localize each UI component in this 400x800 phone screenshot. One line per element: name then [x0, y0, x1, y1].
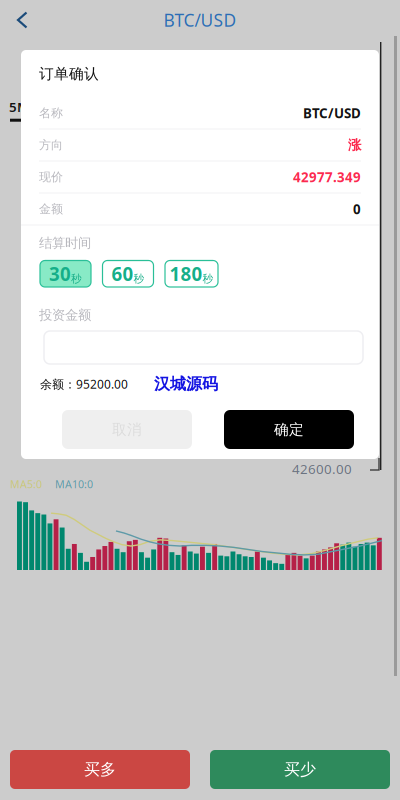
staticText: 涨 — [348, 137, 361, 153]
staticText: 5M — [9, 98, 29, 116]
staticText: 汉城源码 — [154, 374, 218, 394]
staticText: 订单确认 — [39, 65, 99, 83]
button[interactable]: 买多 — [10, 750, 190, 789]
staticText: 买多 — [84, 760, 116, 779]
staticText: 30 — [49, 261, 71, 286]
staticText: 180 — [169, 261, 202, 286]
staticText: 42600.00 — [292, 460, 352, 478]
button[interactable]: 60 — [102, 260, 153, 287]
staticText: 买少 — [284, 760, 316, 779]
staticText: BTC/USD — [163, 8, 236, 31]
button[interactable]: Back — [0, 1, 40, 39]
staticText: 取消 — [112, 420, 142, 438]
staticText: 确定 — [274, 420, 304, 438]
staticText: 投资金额 — [39, 307, 91, 323]
staticText: 方向 — [39, 138, 63, 152]
staticText: 秒 — [71, 272, 82, 285]
staticText: MA10:0 — [55, 477, 93, 491]
staticText: 名称 — [39, 106, 63, 120]
button[interactable]: 30 — [40, 260, 91, 287]
staticText: 金额 — [39, 202, 63, 216]
staticText: 42977.349 — [293, 168, 361, 186]
staticText: 秒 — [133, 272, 144, 285]
staticText: MA5:0 — [10, 477, 42, 491]
staticText: 现价 — [39, 170, 63, 184]
staticText: BTC/USD — [303, 104, 361, 122]
button[interactable]: 确定 — [224, 410, 354, 449]
staticText: 秒 — [202, 272, 213, 285]
staticText: 余额：95200.00 — [40, 376, 128, 392]
button[interactable]: 180 — [165, 260, 218, 287]
button[interactable]: 买少 — [210, 750, 390, 789]
staticText: 结算时间 — [39, 235, 91, 251]
staticText: 60 — [111, 261, 133, 286]
staticText: 0 — [353, 200, 361, 218]
